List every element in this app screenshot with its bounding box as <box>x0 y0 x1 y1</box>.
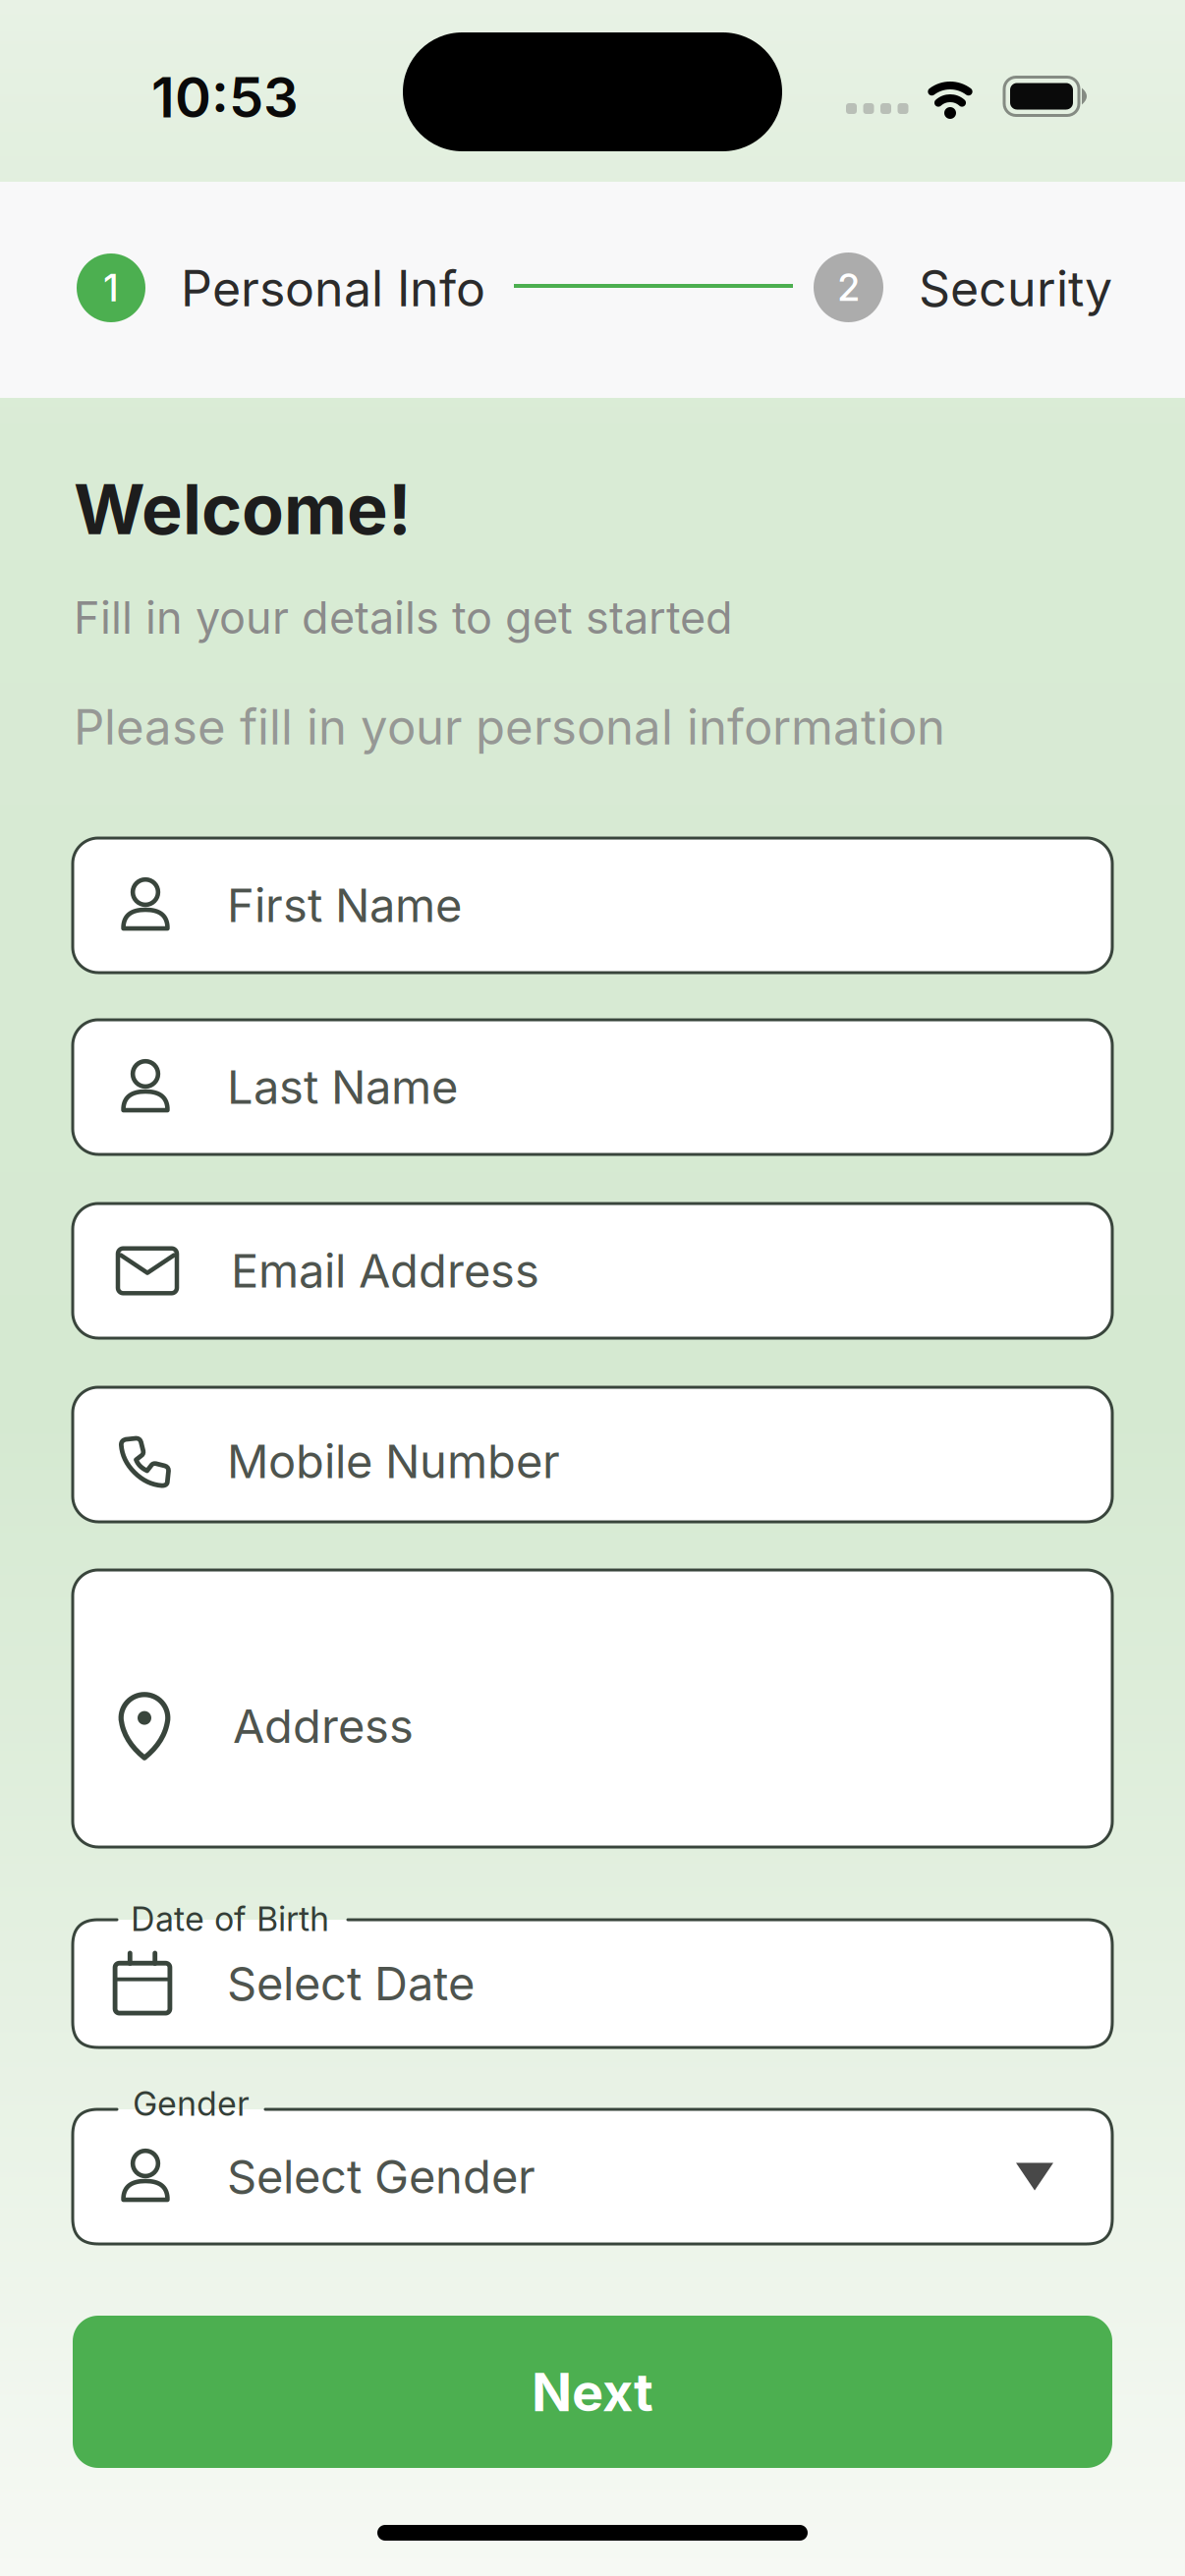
button[interactable]: Address <box>73 1570 1112 1847</box>
staticText: Date of Birth <box>131 1899 329 1938</box>
staticText: First Name <box>227 878 462 933</box>
staticText: Select Gender <box>227 2149 536 2204</box>
button[interactable]: First Name <box>73 838 1112 973</box>
staticText: Last Name <box>227 1060 458 1114</box>
staticText: Fill in your details to get started <box>74 591 733 644</box>
staticText: Gender <box>133 2084 250 2123</box>
button[interactable]: Email Address <box>73 1204 1112 1338</box>
staticText: Select Date <box>227 1956 475 2011</box>
staticText: Security <box>919 259 1112 317</box>
button[interactable]: Select Date <box>73 1920 1112 2047</box>
staticText: Email Address <box>231 1244 539 1298</box>
staticText: Mobile Number <box>227 1434 560 1489</box>
button[interactable]: Next <box>73 2316 1112 2468</box>
staticText: 10:53 <box>151 65 299 130</box>
staticText: Welcome! <box>74 469 412 550</box>
staticText: 1 <box>103 266 119 310</box>
staticText: Personal Info <box>181 259 485 317</box>
button[interactable]: Last Name <box>73 1020 1112 1154</box>
button[interactable]: Select Gender <box>73 2109 1112 2244</box>
staticText: Address <box>233 1699 414 1753</box>
staticText: 2 <box>837 265 860 309</box>
staticText: Please fill in your personal information <box>74 699 945 755</box>
button[interactable]: Mobile Number <box>73 1387 1112 1522</box>
staticText: Next <box>532 2360 653 2423</box>
